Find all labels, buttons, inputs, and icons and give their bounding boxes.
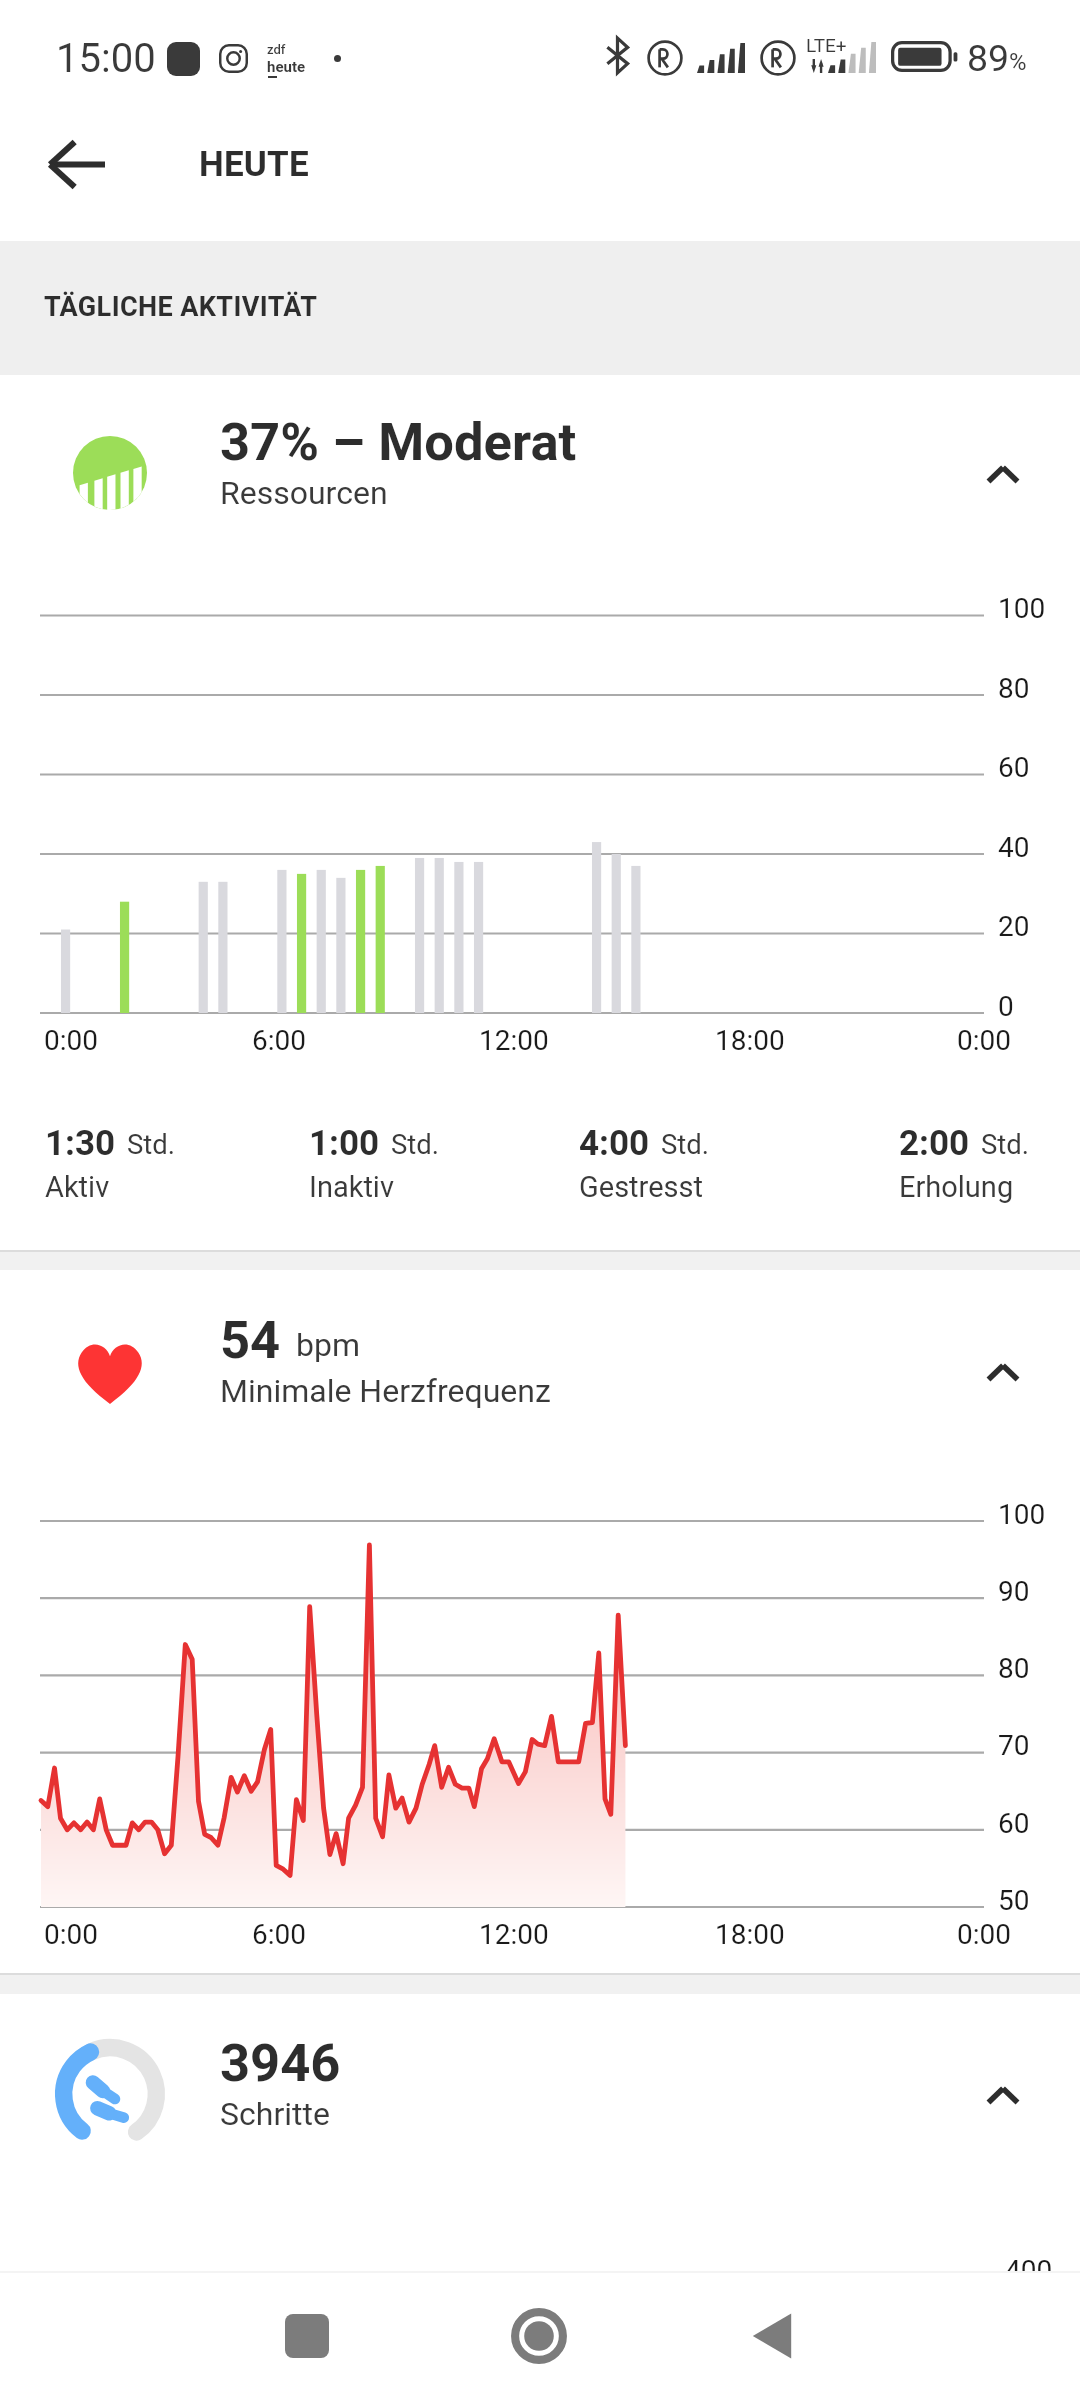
staticText: 15:00 bbox=[56, 35, 156, 82]
staticText: 4:00 bbox=[579, 1123, 650, 1164]
button[interactable]: Zuklappen bbox=[955, 426, 1051, 522]
staticText: 0:00 bbox=[957, 1024, 1011, 1057]
staticText: bpm bbox=[296, 1326, 360, 1364]
button[interactable]: 37% – Moderat bbox=[0, 398, 1080, 548]
staticText: Minimale Herzfrequenz bbox=[220, 1372, 551, 1410]
staticText: 80 bbox=[998, 1652, 1030, 1685]
staticText: Std. bbox=[391, 1128, 440, 1160]
staticText: 0:00 bbox=[44, 1024, 98, 1057]
staticText: 400 bbox=[1005, 2254, 1053, 2287]
staticText: HEUTE bbox=[199, 144, 309, 185]
button[interactable]: Zuklappen bbox=[955, 1324, 1051, 1420]
staticText: 0:00 bbox=[957, 1918, 1011, 1951]
staticText: 40 bbox=[998, 831, 1030, 864]
staticText: LTE+ bbox=[806, 34, 847, 56]
staticText: 89 bbox=[967, 36, 1010, 80]
staticText: 50 bbox=[998, 1884, 1030, 1917]
staticText: Inaktiv bbox=[309, 1170, 394, 1204]
staticText: Schritte bbox=[220, 2095, 330, 2133]
staticText: Gestresst bbox=[579, 1170, 703, 1204]
staticText: % bbox=[1009, 48, 1027, 76]
staticText: 3946 bbox=[220, 2032, 341, 2094]
button[interactable]: Startseite bbox=[466, 2271, 612, 2400]
staticText: heute bbox=[267, 58, 306, 76]
staticText: 0:00 bbox=[44, 1918, 98, 1951]
staticText: 90 bbox=[998, 1575, 1030, 1608]
button[interactable]: 54 bbox=[0, 1296, 1080, 1446]
staticText: Erholung bbox=[899, 1170, 1014, 1204]
staticText: zdf bbox=[267, 42, 286, 57]
staticText: 18:00 bbox=[715, 1024, 785, 1057]
staticText: 1:30 bbox=[45, 1123, 116, 1164]
staticText: 60 bbox=[998, 1807, 1030, 1840]
staticText: 12:00 bbox=[479, 1918, 549, 1951]
staticText: 80 bbox=[998, 672, 1030, 705]
staticText: 12:00 bbox=[479, 1024, 549, 1057]
staticText: Std. bbox=[661, 1128, 710, 1160]
staticText: 0 bbox=[998, 990, 1014, 1023]
button[interactable]: Zurück bbox=[23, 110, 131, 218]
staticText: 37% – Moderat bbox=[220, 411, 577, 473]
staticText: 70 bbox=[998, 1729, 1030, 1762]
staticText: 100 bbox=[998, 592, 1046, 625]
staticText: 18:00 bbox=[715, 1918, 785, 1951]
button[interactable]: Zurück bbox=[699, 2271, 845, 2400]
staticText: 54 bbox=[220, 1309, 281, 1371]
staticText: 6:00 bbox=[252, 1024, 306, 1057]
staticText: 1:00 bbox=[309, 1123, 380, 1164]
staticText: Std. bbox=[981, 1128, 1030, 1160]
button[interactable]: Zuklappen bbox=[955, 2047, 1051, 2143]
button[interactable]: Letzte Apps bbox=[234, 2271, 380, 2400]
staticText: 100 bbox=[998, 1498, 1046, 1531]
staticText: Std. bbox=[127, 1128, 176, 1160]
staticText: 6:00 bbox=[252, 1918, 306, 1951]
staticText: 2:00 bbox=[899, 1123, 970, 1164]
staticText: 20 bbox=[998, 910, 1030, 943]
staticText: Aktiv bbox=[45, 1170, 110, 1204]
staticText: TÄGLICHE AKTIVITÄT bbox=[44, 291, 318, 323]
staticText: Ressourcen bbox=[220, 474, 388, 512]
staticText: 60 bbox=[998, 751, 1030, 784]
button[interactable]: 3946 bbox=[0, 2019, 1080, 2169]
